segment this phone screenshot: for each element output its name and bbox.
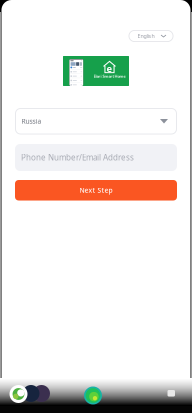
button[interactable]: Next Step (15, 180, 177, 200)
button[interactable]: Russia (15, 108, 177, 134)
staticText: English (137, 32, 154, 40)
staticText: e (106, 62, 112, 74)
staticText: Elari SmartHome (93, 73, 125, 79)
button[interactable]: English (128, 30, 173, 42)
staticText: Russia (21, 117, 41, 126)
staticText: Next Step (79, 186, 112, 195)
staticText: Phone Number/Email Address (21, 152, 134, 163)
